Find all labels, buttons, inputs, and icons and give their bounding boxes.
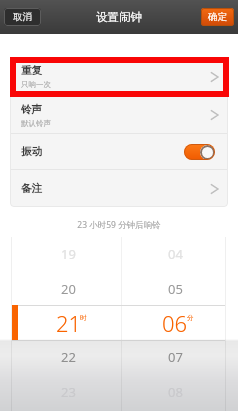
button[interactable]: 04 [123,237,227,271]
button[interactable]: 08 [123,375,227,409]
button[interactable]: 22 [16,340,121,374]
button[interactable]: 振动 [10,134,228,169]
staticText: 08 [168,383,183,401]
button[interactable]: Vibration on [184,144,215,160]
button[interactable]: 07 [123,340,227,374]
button[interactable]: 备注 [10,170,228,207]
staticText: 04 [168,245,183,263]
staticText: 19 [61,245,76,263]
staticText: 默认铃声 [21,119,51,128]
staticText: 06 [162,308,188,338]
staticText: 重复 [21,64,42,77]
button[interactable]: 取消 [4,8,41,26]
button[interactable]: 05 [123,272,227,306]
staticText: 05 [168,280,183,298]
button[interactable]: 确定 [201,8,234,26]
staticText: 铃声 [21,103,42,116]
button[interactable]: 06 [123,306,227,340]
staticText: 时 [80,314,87,322]
staticText: 07 [168,348,183,366]
staticText: 取消 [13,11,32,23]
button[interactable]: 21 [16,306,121,340]
staticText: 确定 [208,11,227,23]
button[interactable]: 重复 [10,57,228,96]
staticText: 23 小时59 分钟后响铃 [0,219,238,231]
staticText: 振动 [21,145,42,158]
staticText: 设置闹钟 [96,10,142,24]
button[interactable]: 铃声 [10,97,228,133]
staticText: 备注 [21,182,42,195]
staticText: 21 [56,308,82,338]
staticText: 23 [61,383,76,401]
staticText: 分 [187,314,194,322]
button[interactable]: 23 [16,375,121,409]
button[interactable]: 20 [16,272,121,306]
staticText: 只响一次 [21,80,51,89]
staticText: 20 [61,280,76,298]
staticText: 22 [61,348,76,366]
